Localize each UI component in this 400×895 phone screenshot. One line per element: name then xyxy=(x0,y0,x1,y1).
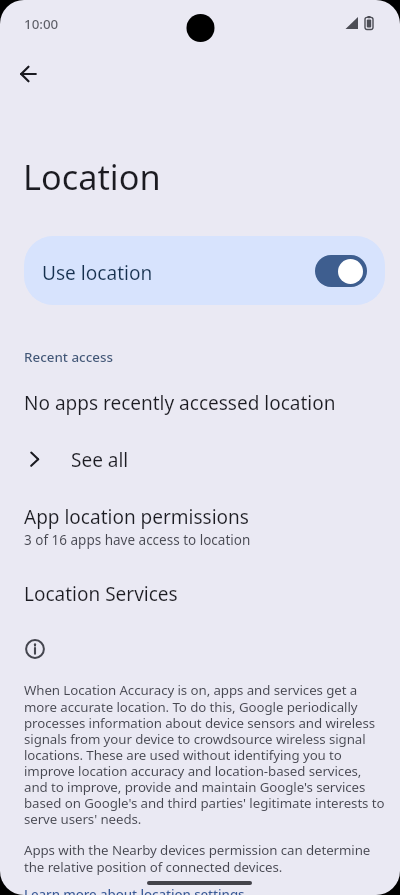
button[interactable]: Back xyxy=(6,52,50,96)
staticText: Recent access xyxy=(24,348,113,366)
staticText: Use location xyxy=(42,260,153,286)
button[interactable]: Use location xyxy=(24,236,385,305)
staticText: No apps recently accessed location xyxy=(24,390,336,416)
staticText: When Location Accuracy is on, apps and s… xyxy=(24,681,388,828)
staticText: Location xyxy=(23,153,161,200)
button[interactable]: Learn more about location settings xyxy=(24,885,245,895)
staticText: 10:00 xyxy=(24,15,59,33)
button[interactable]: See all xyxy=(0,440,400,478)
staticText: App location permissions xyxy=(24,504,249,530)
staticText: Apps with the Nearby devices permission … xyxy=(24,841,388,876)
staticText: See all xyxy=(71,447,129,473)
staticText: 3 of 16 apps have access to location xyxy=(24,531,251,549)
other: Information xyxy=(25,639,45,659)
staticText: Location Services xyxy=(24,581,178,607)
